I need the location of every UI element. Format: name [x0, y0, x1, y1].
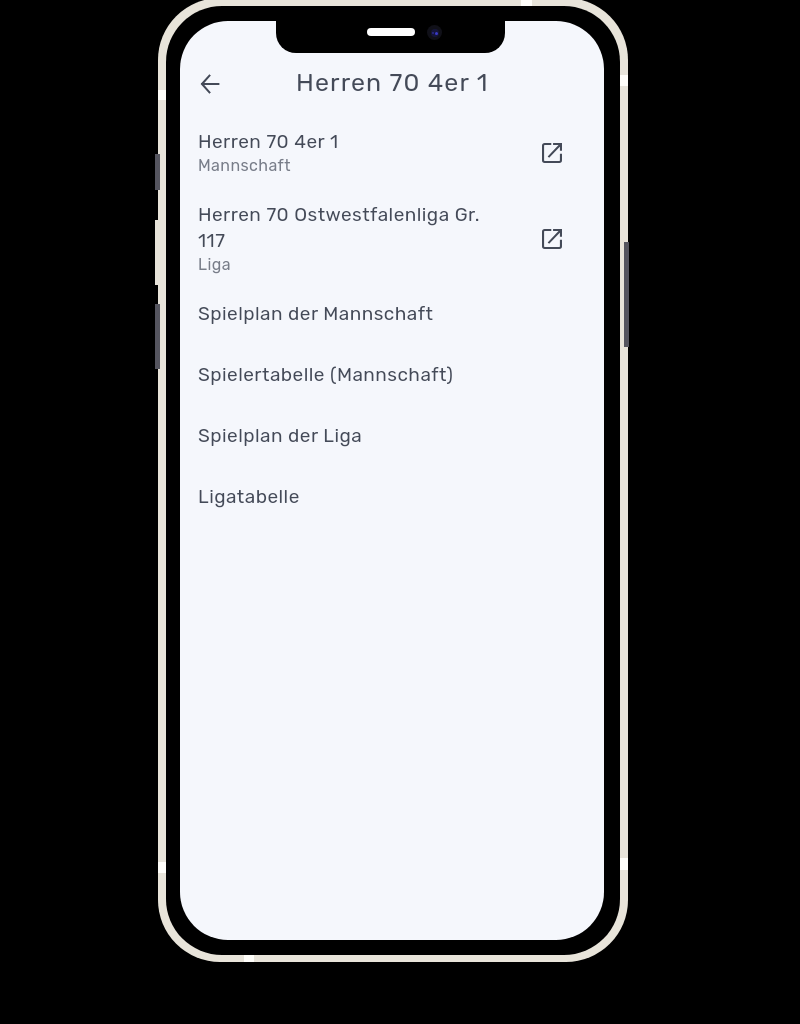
button[interactable]: Ligatabelle	[180, 466, 604, 527]
button[interactable]: Back	[193, 67, 227, 101]
button[interactable]: Spielertabelle (Mannschaft)	[180, 344, 604, 405]
button[interactable]: Spielplan der Liga	[180, 405, 604, 466]
staticText: Ligatabelle	[198, 485, 300, 508]
staticText: Spielplan der Mannschaft	[198, 302, 434, 325]
staticText: Herren 70 4er 1	[296, 68, 489, 98]
button[interactable]: Herren 70 4er 1	[180, 130, 604, 175]
staticText: Herren 70 4er 1	[198, 130, 339, 153]
staticText: Herren 70 Ostwestfalenliga Gr. 117	[198, 203, 490, 252]
button[interactable]: Spielplan der Mannschaft	[180, 283, 604, 344]
button[interactable]: Herren 70 Ostwestfalenliga Gr. 117	[180, 203, 604, 274]
staticText: Spielertabelle (Mannschaft)	[198, 363, 454, 386]
staticText: Mannschaft	[198, 156, 291, 175]
staticText: Spielplan der Liga	[198, 424, 363, 447]
staticText: Liga	[198, 255, 231, 274]
